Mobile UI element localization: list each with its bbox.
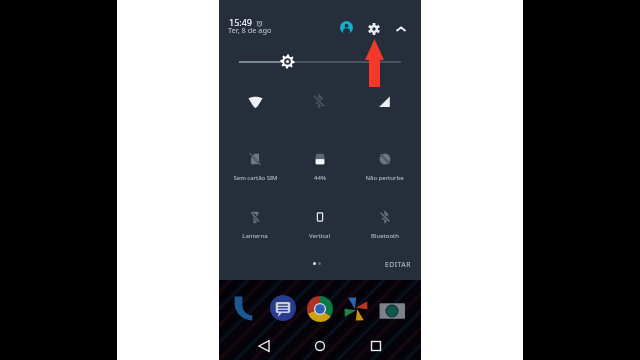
- staticText: Bluetooth: [371, 232, 399, 240]
- button[interactable]: Settings: [368, 23, 380, 35]
- button[interactable]: Messages: [270, 295, 296, 321]
- button[interactable]: Phone: [232, 295, 258, 321]
- button[interactable]: Home: [313, 339, 327, 353]
- button[interactable]: Back: [257, 339, 271, 353]
- staticText: EDITAR: [385, 260, 411, 269]
- button[interactable]: Chrome: [307, 296, 333, 322]
- staticText: Sem cartão SIM: [233, 174, 278, 182]
- staticText: Lanterna: [242, 232, 268, 240]
- button[interactable]: Collapse: [395, 23, 407, 35]
- staticText: Ter, 8 de ago: [228, 25, 272, 35]
- button[interactable]: Camera: [379, 298, 405, 324]
- button[interactable]: Não perturbe: [352, 153, 417, 182]
- button[interactable]: Bluetooth: [352, 211, 417, 240]
- button[interactable]: Vertical: [287, 211, 352, 240]
- button[interactable]: Profile: [340, 21, 353, 34]
- button[interactable]: Lanterna: [223, 211, 287, 240]
- button[interactable]: Recents: [369, 339, 383, 353]
- staticText: 15:49: [229, 16, 253, 28]
- staticText: 44%: [314, 174, 326, 182]
- button[interactable]: Sem cartão SIM: [223, 153, 287, 182]
- staticText: Vertical: [309, 232, 330, 240]
- button[interactable]: 44%: [287, 153, 352, 182]
- staticText: Não perturbe: [365, 174, 404, 182]
- button[interactable]: Photos: [343, 296, 369, 322]
- button[interactable]: EDITAR: [385, 260, 411, 269]
